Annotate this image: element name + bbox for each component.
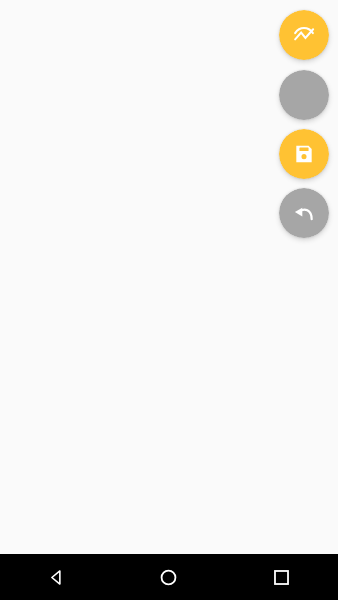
button[interactable]: Recent apps	[225, 554, 338, 600]
button[interactable]: Back	[0, 554, 112, 600]
button[interactable]: Home	[112, 554, 225, 600]
button[interactable]: Action	[279, 70, 329, 120]
button[interactable]: Undo	[279, 188, 329, 238]
button[interactable]: Save	[279, 129, 329, 179]
button[interactable]: Statistics	[279, 10, 329, 60]
